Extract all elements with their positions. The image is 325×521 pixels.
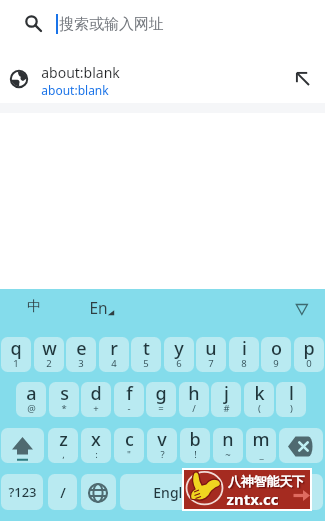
button[interactable] bbox=[0, 0, 325, 52]
staticText: b bbox=[189, 428, 201, 452]
staticText: / bbox=[192, 402, 196, 415]
staticText: t bbox=[143, 337, 150, 361]
staticText: 5 bbox=[143, 357, 149, 370]
button[interactable]: English bbox=[120, 474, 235, 510]
button[interactable]: m bbox=[246, 428, 276, 463]
staticText: w bbox=[42, 337, 57, 361]
staticText: m bbox=[252, 428, 270, 452]
staticText: n bbox=[222, 428, 234, 452]
staticText: - bbox=[127, 402, 131, 415]
button[interactable]: n bbox=[213, 428, 243, 463]
button[interactable]: z bbox=[48, 428, 78, 463]
staticText: f bbox=[126, 382, 133, 406]
button[interactable]: i bbox=[229, 337, 259, 372]
staticText: i bbox=[242, 337, 247, 361]
staticText: z bbox=[59, 428, 68, 452]
staticText: 中 bbox=[27, 298, 41, 316]
button[interactable]: / bbox=[48, 474, 77, 510]
button[interactable] bbox=[279, 428, 323, 463]
staticText: ?123 bbox=[8, 483, 37, 501]
staticText: 9 bbox=[273, 357, 279, 370]
button[interactable]: e bbox=[66, 337, 96, 372]
staticText: y bbox=[174, 337, 184, 361]
staticText: 1 bbox=[13, 357, 19, 370]
button[interactable] bbox=[0, 58, 325, 103]
staticText: k bbox=[254, 382, 265, 406]
staticText: " bbox=[127, 448, 131, 461]
staticText: English bbox=[153, 483, 202, 502]
staticText: 2 bbox=[46, 357, 52, 370]
staticText: s bbox=[60, 382, 69, 406]
staticText: 7 bbox=[208, 357, 214, 370]
button[interactable]: b bbox=[180, 428, 210, 463]
staticText: / bbox=[60, 482, 66, 502]
button[interactable]: r bbox=[99, 337, 129, 372]
staticText: x bbox=[91, 428, 101, 452]
staticText: # bbox=[223, 402, 230, 415]
staticText: , bbox=[62, 448, 65, 461]
staticText: e bbox=[76, 337, 87, 361]
staticText: 6 bbox=[176, 357, 182, 370]
button[interactable] bbox=[1, 428, 44, 463]
staticText: about:blank bbox=[41, 63, 120, 82]
staticText: about:blank bbox=[41, 82, 109, 98]
staticText: c bbox=[125, 428, 134, 452]
button[interactable] bbox=[273, 474, 323, 510]
button[interactable]: En bbox=[83, 297, 113, 318]
button[interactable]: v bbox=[147, 428, 177, 463]
staticText: _ bbox=[259, 448, 264, 461]
staticText: 0 bbox=[306, 357, 312, 370]
staticText: h bbox=[188, 382, 200, 406]
staticText: ~ bbox=[225, 448, 231, 461]
staticText: 搜索或输入网址 bbox=[59, 15, 164, 34]
staticText: v bbox=[157, 428, 167, 452]
button[interactable]: f bbox=[114, 382, 144, 417]
button[interactable]: t bbox=[131, 337, 161, 372]
staticText: En bbox=[89, 297, 108, 318]
button[interactable]: s bbox=[49, 382, 79, 417]
button[interactable]: o bbox=[261, 337, 291, 372]
staticText: = bbox=[158, 402, 164, 415]
staticText: a bbox=[26, 382, 37, 406]
button[interactable]: q bbox=[1, 337, 31, 372]
button[interactable]: c bbox=[114, 428, 144, 463]
staticText: 八神智能天下 bbox=[228, 474, 305, 489]
staticText: ! bbox=[194, 448, 197, 461]
staticText: d bbox=[90, 382, 102, 406]
staticText: g bbox=[155, 382, 167, 406]
button[interactable] bbox=[295, 303, 309, 316]
button[interactable]: y bbox=[164, 337, 194, 372]
button[interactable] bbox=[81, 474, 116, 510]
staticText: p bbox=[303, 337, 315, 361]
staticText: 3 bbox=[78, 357, 84, 370]
staticText: . bbox=[252, 482, 256, 502]
staticText: o bbox=[271, 337, 282, 361]
button[interactable]: g bbox=[146, 382, 176, 417]
button[interactable]: u bbox=[196, 337, 226, 372]
staticText: u bbox=[205, 337, 217, 361]
staticText: r bbox=[110, 337, 118, 361]
staticText: : bbox=[95, 448, 98, 461]
staticText: ? bbox=[160, 448, 165, 461]
button[interactable]: p bbox=[294, 337, 324, 372]
button[interactable]: j bbox=[211, 382, 241, 417]
button[interactable]: h bbox=[179, 382, 209, 417]
button[interactable]: w bbox=[34, 337, 64, 372]
staticText: * bbox=[61, 402, 67, 415]
staticText: ( bbox=[258, 402, 261, 415]
button[interactable]: . bbox=[240, 474, 268, 510]
button[interactable]: k bbox=[244, 382, 274, 417]
staticText: 8 bbox=[241, 357, 247, 370]
button[interactable]: ?123 bbox=[1, 474, 43, 510]
button[interactable]: 中 bbox=[19, 296, 49, 317]
staticText: zntx.cc bbox=[226, 489, 279, 505]
staticText: + bbox=[93, 402, 99, 415]
staticText: l bbox=[289, 382, 294, 406]
staticText: ) bbox=[290, 402, 293, 415]
button[interactable]: d bbox=[81, 382, 111, 417]
button[interactable]: a bbox=[16, 382, 46, 417]
staticText: @ bbox=[27, 402, 36, 415]
staticText: q bbox=[10, 337, 22, 361]
button[interactable]: l bbox=[276, 382, 306, 417]
button[interactable]: x bbox=[81, 428, 111, 463]
